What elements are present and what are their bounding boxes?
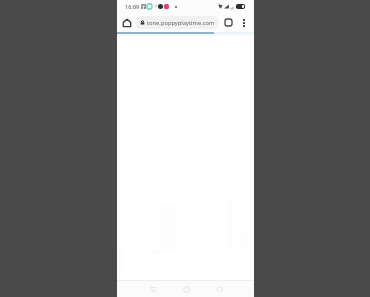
staticText: tone.poppyplaytime.com xyxy=(147,19,215,27)
button[interactable]: More options xyxy=(237,16,250,29)
button[interactable]: tone.poppyplaytime.com xyxy=(135,16,219,29)
button[interactable]: Home xyxy=(178,281,194,297)
button[interactable]: Switch tabs xyxy=(222,16,235,29)
button[interactable]: Recent apps xyxy=(145,281,161,297)
staticText: 16:09 xyxy=(125,3,140,11)
button[interactable]: Back xyxy=(211,281,227,297)
button[interactable]: Home xyxy=(119,15,134,30)
